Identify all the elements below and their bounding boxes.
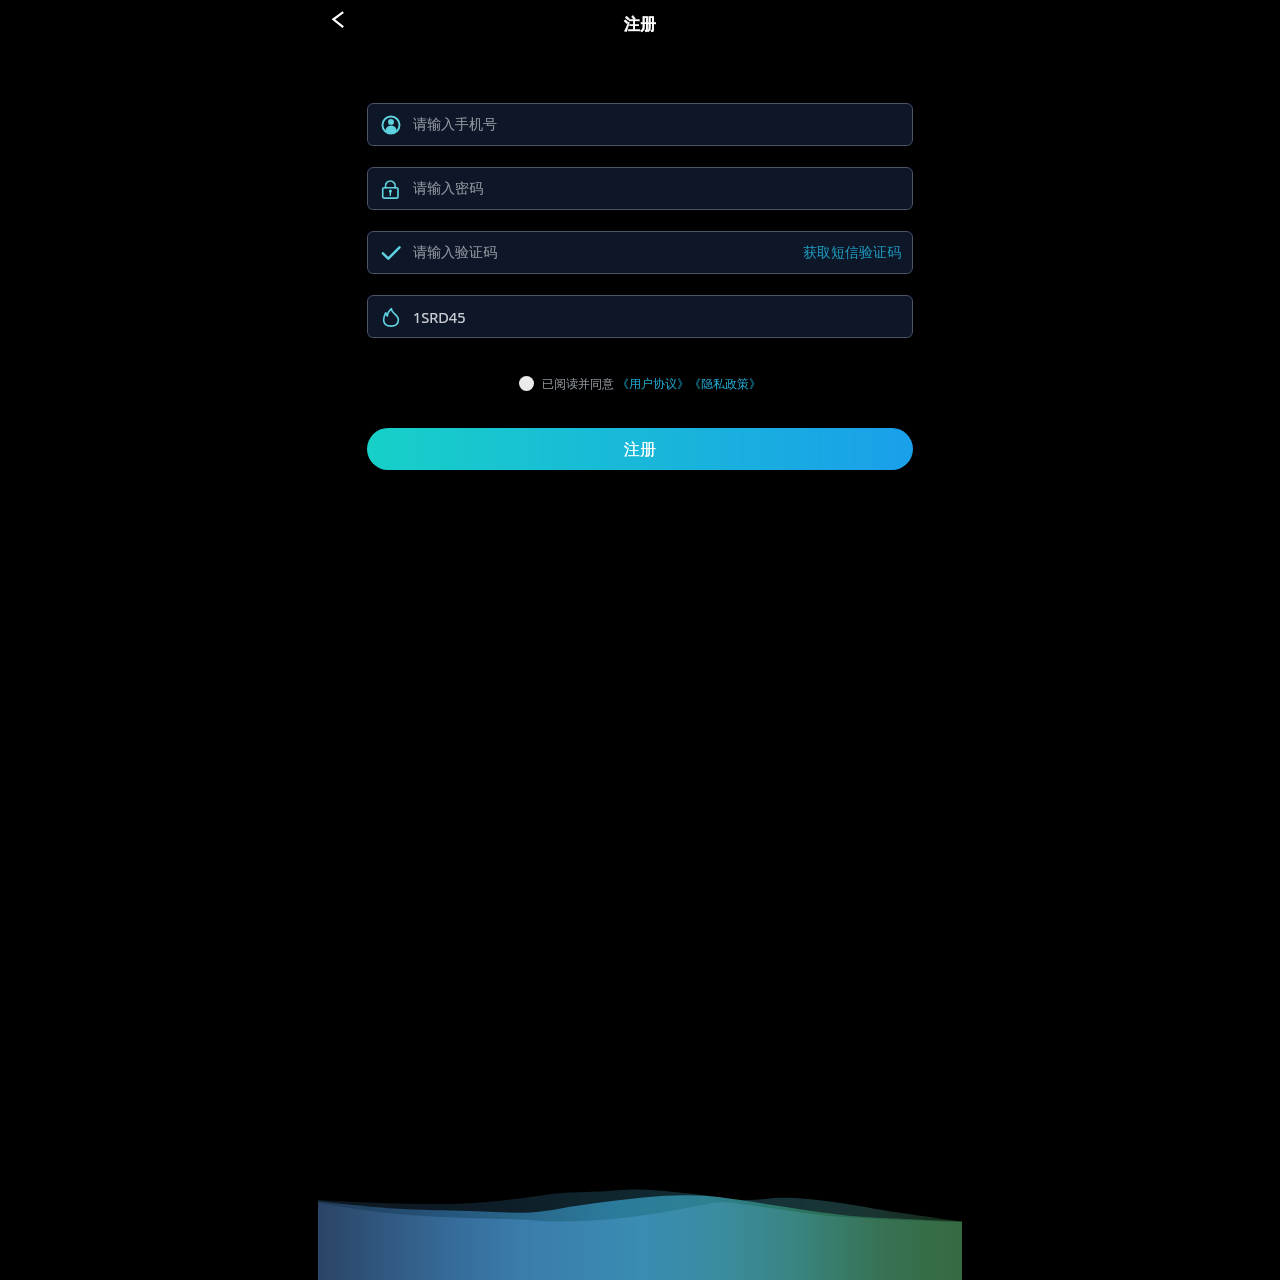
button[interactable]: 获取短信验证码 — [803, 238, 901, 268]
staticText: 已阅读并同意 — [542, 376, 614, 391]
staticText: 注册 — [624, 440, 656, 460]
button[interactable]: 请输入手机号 — [367, 103, 913, 146]
staticText: 获取短信验证码 — [803, 244, 901, 262]
button[interactable]: 1SRD45 — [367, 295, 913, 338]
staticText: 请输入密码 — [413, 180, 483, 198]
button[interactable]: 请输入密码 — [367, 167, 913, 210]
staticText: 《隐私政策》 — [689, 376, 761, 391]
staticText: 《用户协议》 — [617, 376, 689, 391]
staticText: 请输入手机号 — [413, 116, 497, 134]
button[interactable]: 《用户协议》 — [617, 376, 689, 391]
staticText: 1SRD45 — [413, 307, 466, 327]
button[interactable]: Agree to terms — [519, 376, 534, 391]
staticText: 请输入验证码 — [413, 244, 497, 262]
button[interactable]: 《隐私政策》 — [689, 376, 761, 391]
button[interactable]: Back — [327, 7, 352, 32]
button[interactable]: 请输入验证码 — [367, 231, 913, 274]
button[interactable]: 注册 — [367, 428, 913, 470]
staticText: 注册 — [624, 15, 656, 35]
